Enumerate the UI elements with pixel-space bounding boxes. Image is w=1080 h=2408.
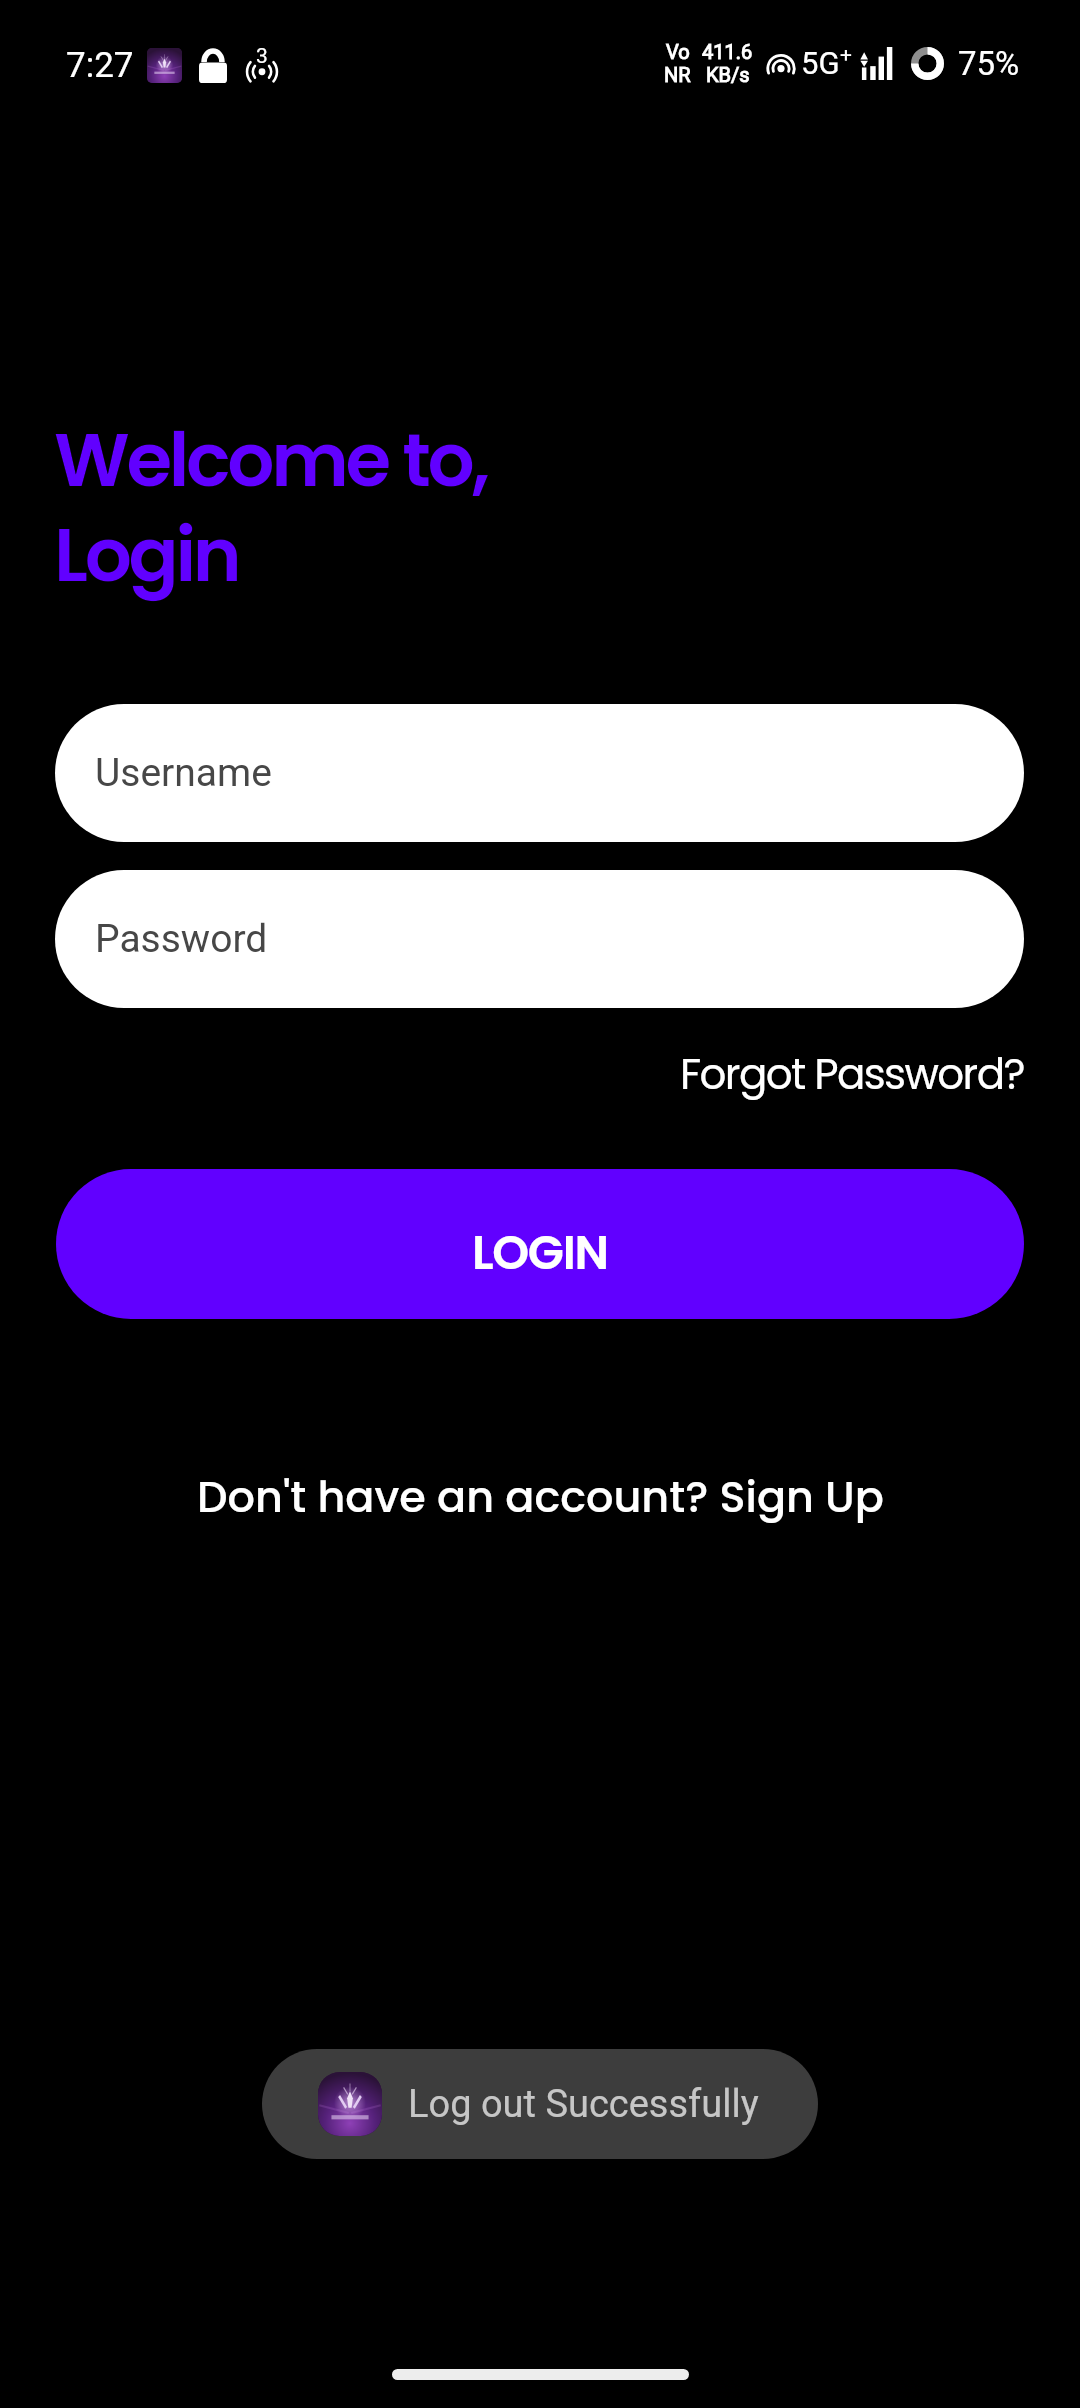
staticText: NR xyxy=(664,63,691,86)
button[interactable]: Forgot Password? xyxy=(680,1045,1024,1104)
button[interactable]: Password xyxy=(55,870,1024,1008)
staticText: Forgot Password? xyxy=(680,1045,1024,1104)
staticText: Username xyxy=(95,750,272,796)
staticText: 411.6 xyxy=(702,40,753,63)
staticText: Password xyxy=(95,916,268,962)
staticText: KB/s xyxy=(706,63,750,86)
other: Signal strength xyxy=(860,47,892,80)
staticText: + xyxy=(840,43,852,68)
other: Hotspot xyxy=(766,50,796,80)
staticText: 75% xyxy=(958,44,1020,83)
button[interactable]: LOGIN xyxy=(56,1169,1024,1319)
staticText: Don't have an account? Sign Up xyxy=(197,1467,884,1527)
staticText: 3 xyxy=(256,44,268,69)
staticText: LOGIN xyxy=(472,1220,608,1286)
button[interactable]: Username xyxy=(55,704,1024,842)
staticText: Log out Successfully xyxy=(408,2082,759,2127)
staticText: Welcome to, Login xyxy=(54,408,488,607)
other: Wireless sharing, 3 devices xyxy=(245,48,279,84)
staticText: 5G xyxy=(801,45,840,81)
staticText: Vo xyxy=(666,40,690,63)
other: Battery 75 percent xyxy=(909,45,946,82)
staticText: 7:27 xyxy=(66,45,134,86)
other: Screen lock xyxy=(199,49,227,83)
button[interactable]: Don't have an account? Sign Up xyxy=(197,1467,884,1527)
